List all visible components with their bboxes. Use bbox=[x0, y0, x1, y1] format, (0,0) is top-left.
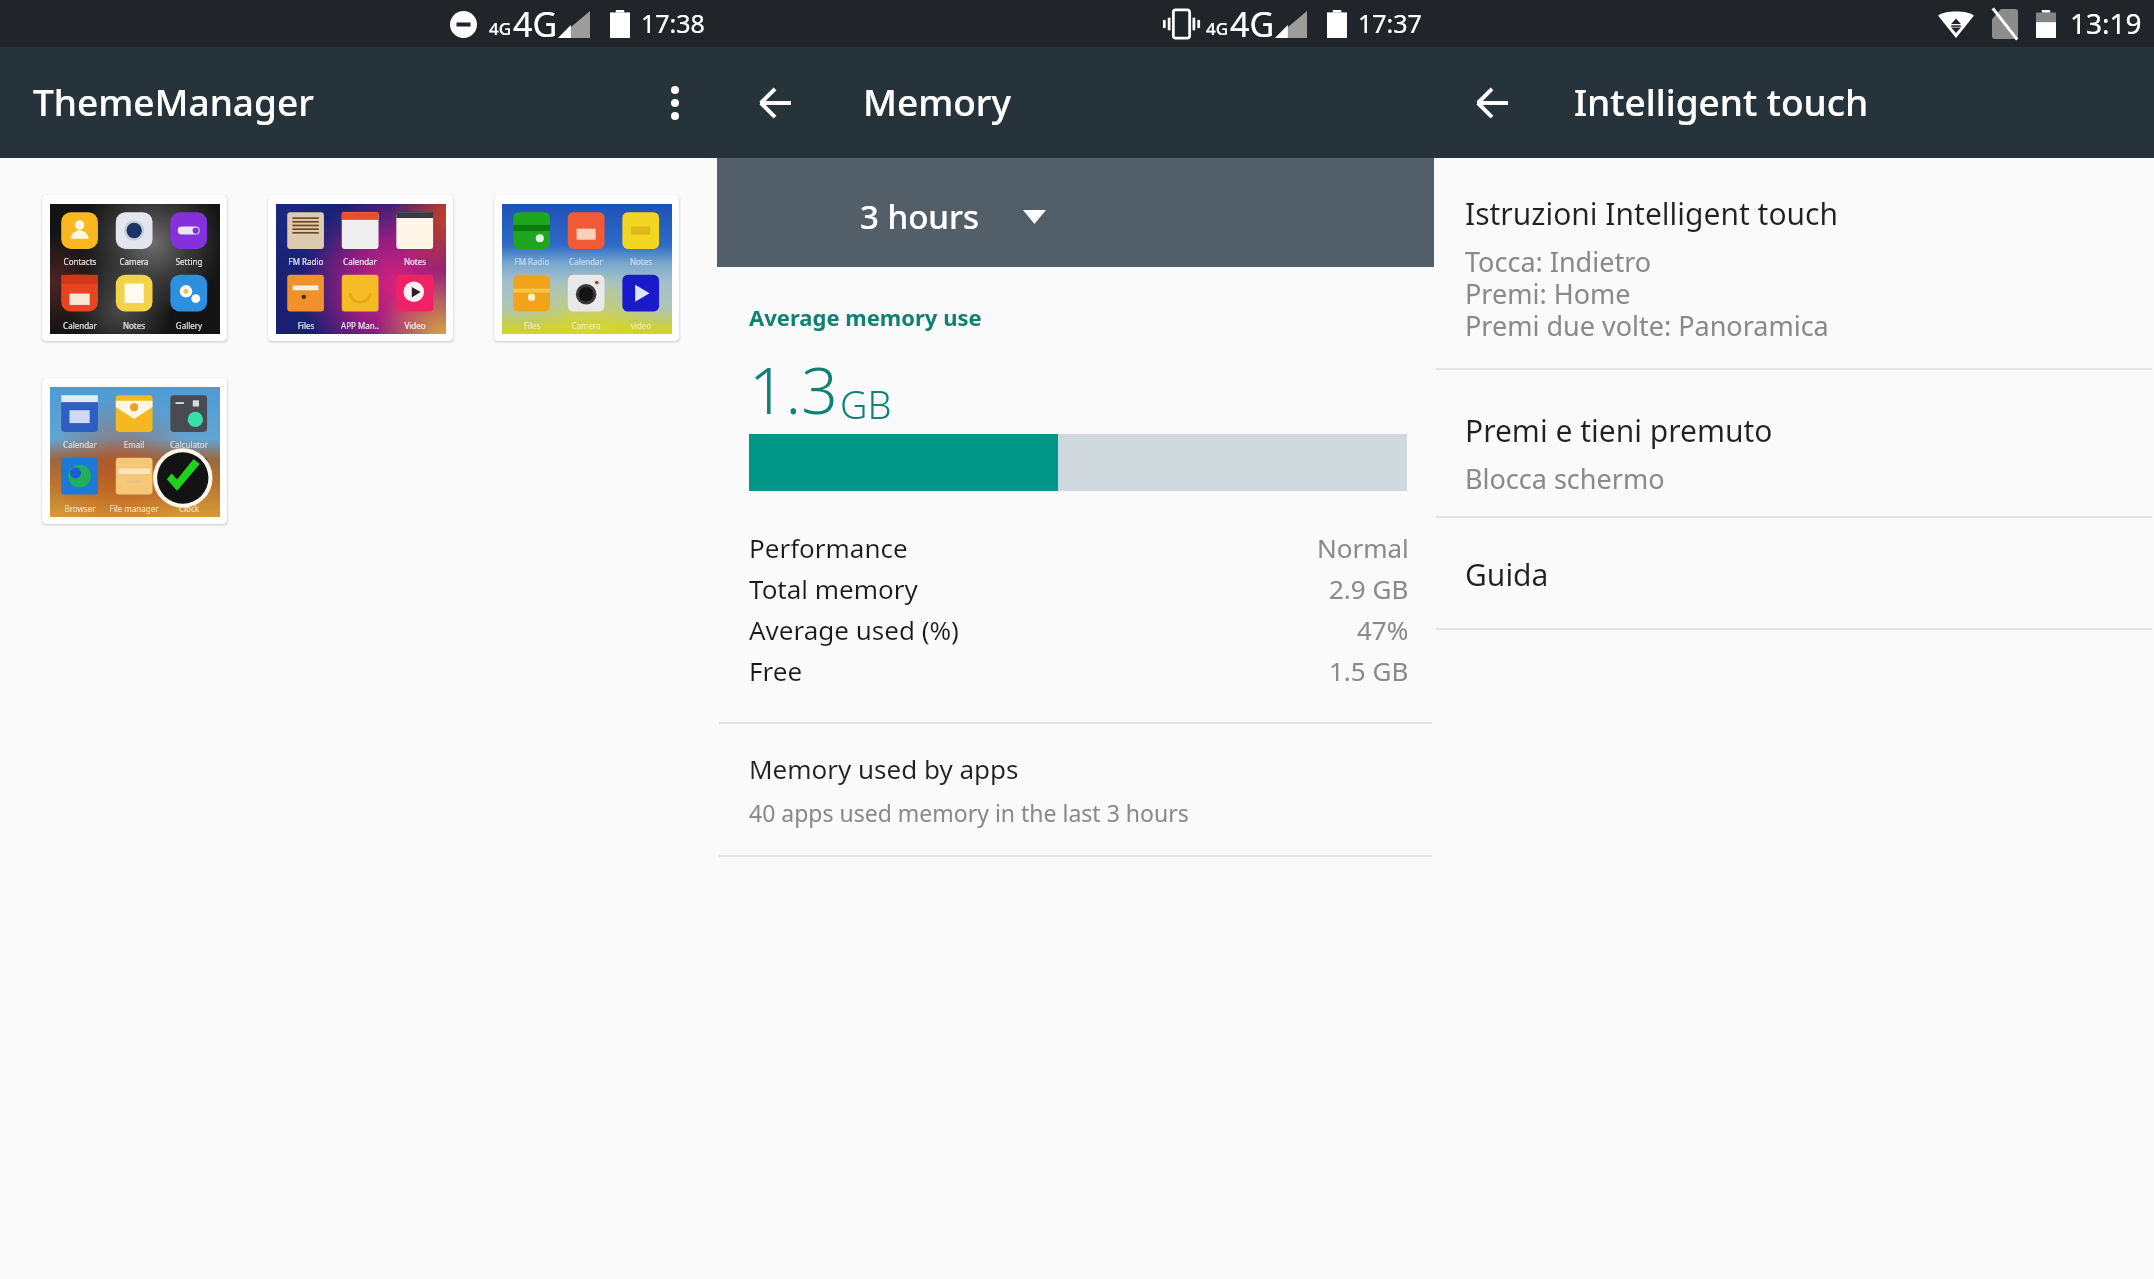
button[interactable]: 3 hours bbox=[717, 158, 1434, 267]
staticText: Video bbox=[387, 320, 443, 331]
staticText: Premi due volte: Panoramica bbox=[1465, 307, 1829, 339]
button[interactable]: Guida bbox=[1434, 518, 2154, 628]
staticText: 17:37 bbox=[1358, 6, 1422, 40]
button[interactable]: FM Radio bbox=[268, 195, 453, 341]
staticText: Istruzioni Intelligent touch bbox=[1465, 193, 1839, 234]
button[interactable]: FM Radio bbox=[494, 195, 679, 341]
staticText: Camera bbox=[558, 320, 614, 331]
staticText: File manager bbox=[106, 503, 162, 514]
staticText: Intelligent touch bbox=[1574, 76, 1869, 126]
staticText: Free bbox=[749, 653, 803, 688]
staticText: Files bbox=[278, 320, 334, 331]
button[interactable]: Premi e tieni premuto bbox=[1434, 370, 2154, 516]
staticText: FM Radio bbox=[278, 256, 334, 267]
staticText: Gallery bbox=[161, 320, 217, 331]
button[interactable]: Memory used by apps bbox=[717, 724, 1434, 855]
button[interactable]: Istruzioni Intelligent touch bbox=[1434, 158, 2154, 368]
staticText: Files bbox=[504, 320, 560, 331]
staticText: video bbox=[613, 320, 669, 331]
staticText: 47% bbox=[1357, 612, 1409, 647]
staticText: Clock bbox=[161, 503, 217, 514]
staticText: Contacts bbox=[52, 256, 108, 267]
staticText: Performance bbox=[749, 530, 908, 565]
staticText: FM Radio bbox=[504, 256, 560, 267]
staticText: Calendar bbox=[558, 256, 614, 267]
staticText: APP Man.. bbox=[332, 320, 388, 331]
staticText: Notes bbox=[387, 256, 443, 267]
staticText: Memory bbox=[863, 76, 1012, 126]
staticText: Browser bbox=[52, 503, 108, 514]
staticText: 13:19 bbox=[2070, 4, 2142, 42]
staticText: Total memory bbox=[749, 571, 918, 606]
staticText: Notes bbox=[106, 320, 162, 331]
button[interactable]: Contacts bbox=[42, 195, 227, 341]
staticText: Guida bbox=[1465, 554, 1549, 595]
staticText: Premi: Home bbox=[1465, 275, 1631, 307]
staticText: 4G bbox=[1206, 17, 1229, 40]
staticText: Calendar bbox=[52, 439, 108, 450]
staticText: 17:38 bbox=[641, 6, 705, 40]
button[interactable]: Calendar bbox=[42, 378, 227, 524]
staticText: 1.5 GB bbox=[1329, 653, 1409, 688]
staticText: 3 hours bbox=[860, 194, 979, 239]
staticText: Calendar bbox=[52, 320, 108, 331]
staticText: 4G bbox=[1230, 1, 1275, 47]
staticText: Normal bbox=[1317, 530, 1409, 565]
staticText: ThemeManager bbox=[33, 76, 314, 126]
staticText: Premi e tieni premuto bbox=[1465, 410, 1773, 451]
staticText: Average memory use bbox=[749, 302, 982, 332]
staticText: 40 apps used memory in the last 3 hours bbox=[749, 797, 1189, 828]
staticText: Email bbox=[106, 439, 162, 450]
staticText: Setting bbox=[161, 256, 217, 267]
staticText: 4G bbox=[489, 17, 512, 40]
staticText: GB bbox=[840, 378, 892, 430]
staticText: Memory used by apps bbox=[749, 751, 1019, 786]
staticText: 4G bbox=[513, 1, 558, 47]
staticText: Average used (%) bbox=[749, 612, 959, 647]
button[interactable]: Back bbox=[1460, 71, 1524, 135]
staticText: Notes bbox=[613, 256, 669, 267]
staticText: Calendar bbox=[332, 256, 388, 267]
button[interactable]: More options bbox=[643, 71, 707, 135]
button[interactable]: Back bbox=[743, 71, 807, 135]
staticText: 2.9 GB bbox=[1329, 571, 1409, 606]
staticText: Calculator bbox=[161, 439, 217, 450]
staticText: Blocca schermo bbox=[1465, 460, 1665, 492]
staticText: Camera bbox=[106, 256, 162, 267]
staticText: 1.3 bbox=[749, 346, 838, 433]
staticText: Tocca: Indietro bbox=[1465, 243, 1652, 275]
